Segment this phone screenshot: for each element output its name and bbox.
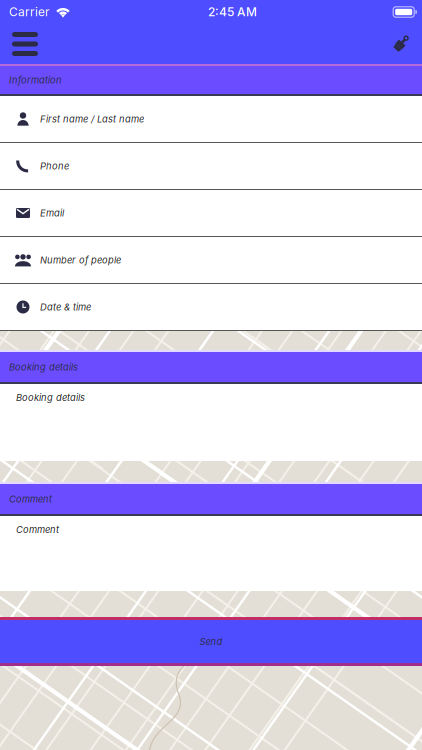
staticText: Send: [199, 636, 222, 647]
button[interactable]: Email: [0, 190, 422, 237]
button[interactable]: Comment: [0, 516, 422, 591]
staticText: Comment: [16, 524, 59, 535]
staticText: Email: [40, 207, 64, 219]
button[interactable]: First name / Last name: [0, 96, 422, 143]
button[interactable]: Booking details: [0, 384, 422, 461]
button[interactable]: Menu: [4, 24, 46, 64]
staticText: Information: [9, 74, 62, 86]
button[interactable]: Number of people: [0, 237, 422, 284]
button[interactable]: Date & time: [0, 284, 422, 331]
staticText: Booking details: [9, 361, 78, 373]
staticText: Comment: [9, 493, 52, 505]
staticText: Date & time: [40, 301, 91, 313]
button[interactable]: Phone: [0, 143, 422, 190]
staticText: 2:45 AM: [208, 5, 257, 19]
staticText: Carrier: [9, 5, 50, 19]
staticText: Number of people: [40, 254, 121, 266]
staticText: Phone: [40, 160, 69, 172]
button[interactable]: Send: [0, 617, 422, 666]
staticText: Booking details: [16, 392, 85, 403]
button[interactable]: Theme: [385, 27, 417, 61]
staticText: First name / Last name: [40, 113, 144, 125]
